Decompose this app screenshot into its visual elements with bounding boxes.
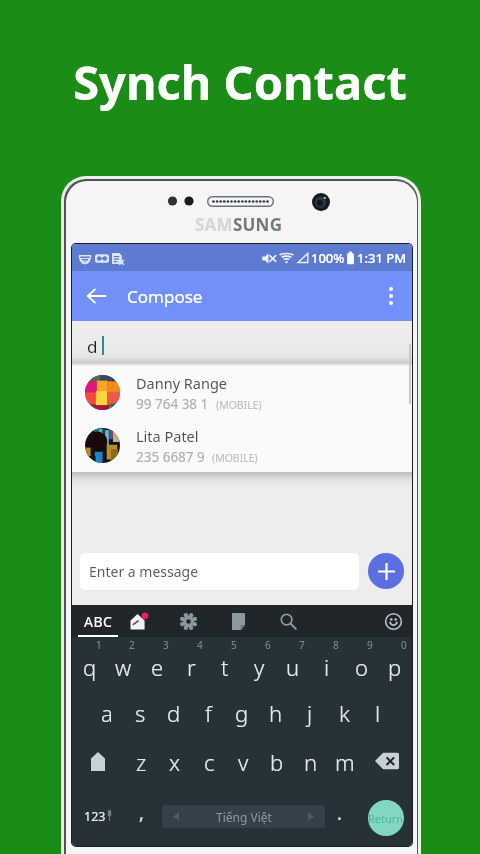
button[interactable]: z (124, 736, 158, 785)
button[interactable]: r (174, 637, 208, 687)
button[interactable]: Back (80, 280, 112, 312)
staticText: s (135, 698, 146, 728)
staticText: f (205, 698, 212, 728)
button[interactable]: d (157, 687, 191, 736)
button[interactable]: x (158, 736, 192, 785)
staticText: y (254, 652, 265, 682)
staticText: n (304, 747, 318, 777)
staticText: 5 (231, 638, 237, 652)
staticText: 123 (84, 808, 106, 825)
button[interactable]: Clipboard (224, 607, 252, 635)
button[interactable]: h (259, 687, 293, 736)
staticText: Lita Patel (136, 426, 199, 446)
staticText: g (235, 698, 249, 728)
staticText: 235 6687 9 (136, 448, 205, 466)
staticText: u (286, 652, 300, 682)
button[interactable]: f (191, 687, 225, 736)
staticText: d (167, 698, 181, 728)
button[interactable]: p (378, 637, 412, 687)
staticText: b (270, 747, 284, 777)
button[interactable]: Tiếng Việt (162, 805, 325, 828)
staticText: 4 (197, 638, 203, 652)
staticText: Danny Range (136, 373, 228, 393)
staticText: w (115, 652, 132, 682)
button[interactable]: Shift (72, 736, 124, 785)
button[interactable]: e (140, 637, 174, 687)
button[interactable]: , (128, 785, 154, 846)
staticText: SUNG (233, 213, 283, 236)
button[interactable]: v (226, 736, 260, 785)
staticText: SAM (195, 213, 233, 236)
staticText: 7 (299, 638, 305, 652)
staticText: 1 (96, 638, 102, 652)
staticText: c (204, 747, 215, 777)
button[interactable]: Emoji (380, 608, 406, 634)
button[interactable]: w (106, 637, 140, 687)
staticText: a (101, 698, 113, 728)
button[interactable]: y (242, 637, 276, 687)
staticText: (MOBILE) (216, 398, 262, 412)
staticText: l (375, 698, 381, 728)
button[interactable]: m (328, 736, 362, 785)
staticText: r (187, 652, 196, 682)
button[interactable]: Search (274, 607, 302, 635)
button[interactable]: q (73, 637, 106, 687)
staticText: , (139, 801, 144, 826)
staticText: 8 (333, 638, 339, 652)
staticText: h (269, 698, 283, 728)
staticText: ABC (84, 612, 113, 631)
button[interactable]: j (293, 687, 327, 736)
staticText: m (335, 747, 355, 777)
staticText: 0 (401, 638, 407, 652)
staticText: d (87, 335, 98, 358)
button[interactable]: Stickers (124, 607, 152, 635)
button[interactable]: Lita Patel (72, 419, 412, 472)
button[interactable]: d (72, 321, 412, 366)
staticText: (MOBILE) (212, 451, 258, 465)
staticText: Compose (127, 285, 203, 308)
button[interactable]: k (327, 687, 361, 736)
button[interactable]: l (361, 687, 395, 736)
button[interactable]: g (225, 687, 259, 736)
button[interactable]: Danny Range (72, 366, 412, 419)
button[interactable]: t (208, 637, 242, 687)
button[interactable]: Settings (174, 607, 202, 635)
button[interactable]: b (260, 736, 294, 785)
staticText: v (238, 747, 249, 777)
staticText: x (169, 747, 181, 777)
button[interactable]: 123 (76, 785, 120, 846)
staticText: 9 (367, 638, 373, 652)
button[interactable]: . (326, 785, 352, 846)
button[interactable]: Backspace (362, 736, 412, 785)
button[interactable]: i (310, 637, 344, 687)
staticText: 1:31 PM (357, 249, 407, 267)
button[interactable]: ABC (77, 605, 119, 637)
staticText: Tiếng Việt (216, 809, 272, 825)
staticText: j (307, 698, 313, 728)
staticText: 6 (265, 638, 271, 652)
staticText: 2 (129, 638, 135, 652)
button[interactable]: c (192, 736, 226, 785)
staticText: e (151, 652, 164, 682)
staticText: q (83, 652, 97, 682)
staticText: Return (368, 811, 404, 826)
staticText: Enter a message (89, 562, 199, 581)
button[interactable]: u (276, 637, 310, 687)
button[interactable]: Enter a message (80, 553, 359, 590)
staticText: p (388, 652, 402, 682)
staticText: 3 (163, 638, 169, 652)
button[interactable]: a (90, 687, 123, 736)
staticText: t (221, 652, 229, 682)
staticText: . (337, 801, 342, 826)
staticText: Synch Contact (0, 50, 480, 114)
button[interactable]: n (294, 736, 328, 785)
button[interactable]: Return (368, 800, 404, 836)
button[interactable]: More options (376, 281, 406, 311)
button[interactable]: Add contact (368, 553, 404, 589)
staticText: 100% (311, 249, 345, 267)
staticText: o (355, 652, 368, 682)
staticText: i (324, 652, 330, 682)
button[interactable]: s (123, 687, 157, 736)
staticText: k (339, 698, 350, 728)
button[interactable]: o (344, 637, 378, 687)
